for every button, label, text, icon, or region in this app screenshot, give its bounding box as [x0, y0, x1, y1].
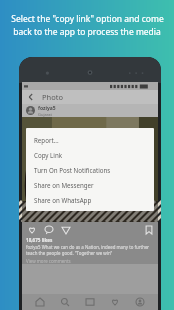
button[interactable]: Comment: [43, 224, 54, 235]
button[interactable]: Turn On Post Notifications: [26, 162, 154, 177]
button[interactable]: Search: [58, 295, 72, 309]
staticText: Gujarat: [38, 112, 52, 117]
staticText: Photo: [42, 92, 63, 102]
staticText: back to the app to process the media: [13, 26, 161, 38]
button[interactable]: Profile: [133, 295, 147, 309]
button[interactable]: foziya5: [26, 104, 154, 117]
button[interactable]: Save: [143, 224, 154, 235]
button[interactable]: Home: [33, 295, 47, 309]
button[interactable]: Add post: [83, 295, 97, 309]
staticText: Turn On Post Notifications: [34, 166, 111, 174]
button[interactable]: Share: [60, 224, 71, 235]
staticText: 18,675 likes: [26, 237, 53, 243]
staticText: Share on Messenger: [34, 181, 94, 189]
staticText: foziya5: [38, 105, 56, 112]
button[interactable]: Copy Link: [26, 147, 154, 162]
button[interactable]: Activity: [108, 295, 122, 309]
button[interactable]: Report...: [26, 132, 154, 147]
button[interactable]: Like: [26, 224, 37, 235]
staticText: Copy Link: [34, 151, 63, 159]
staticText: foziya5 What we can do as a Nation, inde…: [26, 244, 154, 256]
staticText: View more comments: [26, 258, 71, 264]
staticText: Report...: [34, 136, 59, 144]
staticText: Select the "copy link" option and come: [11, 13, 164, 25]
button[interactable]: Share on WhatsApp: [26, 192, 154, 207]
button[interactable]: Back: [26, 92, 36, 102]
staticText: Share on WhatsApp: [34, 196, 92, 204]
button[interactable]: Share on Messenger: [26, 177, 154, 192]
